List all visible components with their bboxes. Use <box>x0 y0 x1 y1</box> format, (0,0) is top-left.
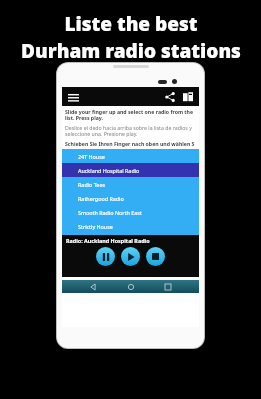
staticText: Smooth Radio North East <box>78 209 142 216</box>
button[interactable]: Back <box>87 281 99 293</box>
button[interactable]: Guide <box>180 89 195 104</box>
button[interactable]: Share <box>162 89 177 104</box>
button[interactable]: Smooth Radio North East <box>62 205 199 219</box>
staticText: Radio Tees <box>78 181 106 188</box>
button[interactable]: Strictly House <box>62 219 199 233</box>
button[interactable]: Rathergood Radio <box>62 191 199 205</box>
staticText: Rathergood Radio <box>78 195 124 202</box>
button[interactable]: Home <box>125 281 137 293</box>
button[interactable]: 24T House <box>62 149 199 163</box>
button[interactable]: Radio Tees <box>62 177 199 191</box>
staticText: Deslice el dedo hacia arriba sobre la li… <box>65 124 196 138</box>
button[interactable]: Pause <box>96 247 115 266</box>
staticText: 24T House <box>78 153 105 160</box>
staticText: Schieben Sie Ihren Finger nach oben und … <box>65 140 195 147</box>
button[interactable]: Stop <box>146 247 165 266</box>
staticText: Auckland Hospital Radio <box>78 167 140 174</box>
staticText: Strictly House <box>78 223 113 230</box>
staticText: Radio: Auckland Hospital Radio <box>66 237 150 244</box>
staticText: Slide your finger up and select one radi… <box>65 108 196 122</box>
button[interactable]: Auckland Hospital Radio <box>62 163 199 177</box>
button[interactable]: Play <box>121 247 140 266</box>
staticText: Durham radio stations <box>21 38 241 64</box>
button[interactable]: Recents <box>162 281 174 293</box>
button[interactable]: Menu <box>66 90 80 104</box>
staticText: Liste the best <box>64 11 198 37</box>
